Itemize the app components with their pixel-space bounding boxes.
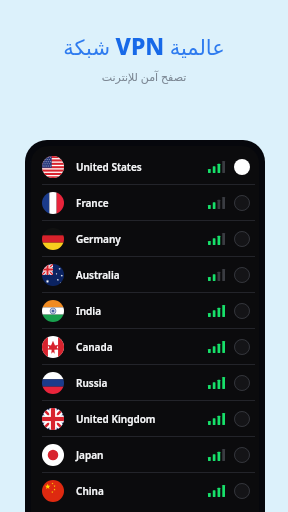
button[interactable]: Select France [234,195,250,211]
staticText: شبكة VPN عالمية [0,30,288,61]
button[interactable]: Russia [31,365,259,400]
button[interactable]: France [31,185,259,220]
staticText: Russia [76,376,108,390]
button[interactable]: Canada [31,329,259,364]
staticText: United Kingdom [76,412,156,426]
button[interactable]: Germany [31,221,259,256]
staticText: Canada [76,340,113,354]
button[interactable]: Select Russia [234,375,250,391]
button[interactable]: Select Japan [234,447,250,463]
button[interactable]: Select United Kingdom [234,411,250,427]
staticText: India [76,304,102,318]
staticText: France [76,196,109,210]
staticText: China [76,484,104,498]
staticText: Japan [76,448,104,462]
button[interactable]: Select India [234,303,250,319]
button[interactable]: United States [31,149,259,184]
button[interactable]: Australia [31,257,259,292]
button[interactable]: Select China [234,483,250,499]
button[interactable]: India [31,293,259,328]
staticText: Germany [76,232,121,246]
button[interactable]: Select Germany [234,231,250,247]
staticText: United States [76,160,142,174]
button[interactable]: Select Canada [234,339,250,355]
button[interactable]: United Kingdom [31,401,259,436]
button[interactable]: Select United States [234,159,250,175]
button[interactable]: Japan [31,437,259,472]
staticText: تصفح آمن للإنترنت [0,69,288,84]
staticText: Australia [76,268,120,282]
button[interactable]: China [31,473,259,508]
button[interactable]: Select Australia [234,267,250,283]
